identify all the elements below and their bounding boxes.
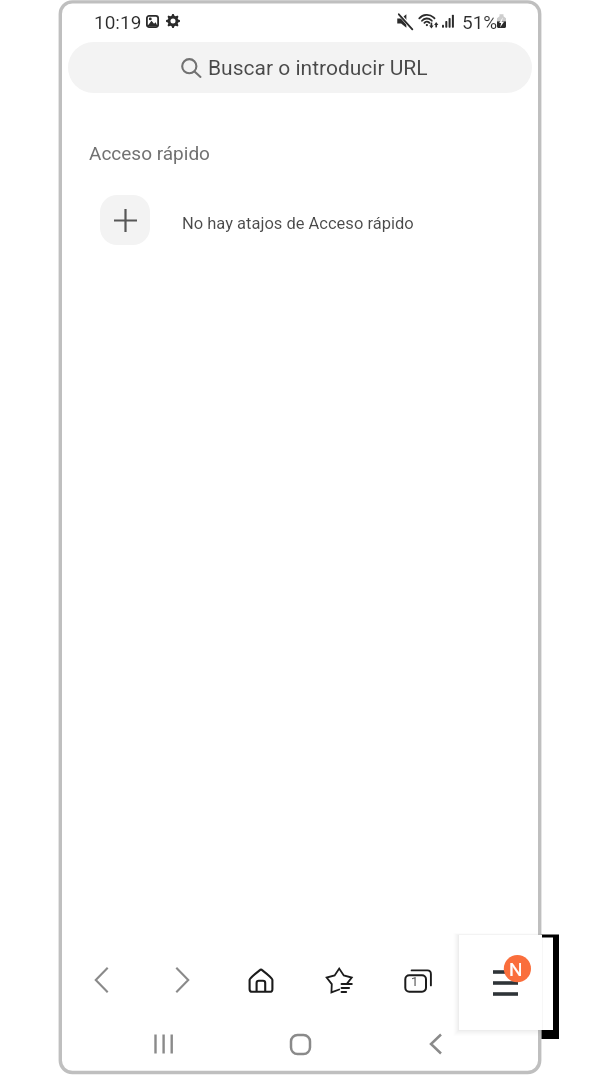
button[interactable]: Inicio: [237, 956, 285, 1004]
staticText: 51%: [462, 11, 498, 33]
staticText: 10:19: [94, 11, 142, 33]
staticText: N: [509, 958, 523, 980]
button[interactable]: Menú: [459, 935, 542, 1030]
staticText: 1: [411, 974, 419, 989]
button[interactable]: Buscar o introducir URL: [68, 42, 532, 93]
button[interactable]: Inicio: [280, 1024, 320, 1064]
button[interactable]: No hay atajos de Acceso rápido: [92, 190, 422, 250]
staticText: Acceso rápido: [89, 142, 210, 164]
staticText: Buscar o introducir URL: [208, 56, 428, 81]
button[interactable]: Volver: [416, 1024, 456, 1064]
button[interactable]: Pestañas: [394, 956, 442, 1004]
button[interactable]: Marcadores: [315, 956, 363, 1004]
button[interactable]: Atrás: [78, 956, 126, 1004]
button[interactable]: Recientes: [144, 1024, 184, 1064]
button[interactable]: Adelante: [158, 956, 206, 1004]
staticText: No hay atajos de Acceso rápido: [182, 214, 414, 233]
